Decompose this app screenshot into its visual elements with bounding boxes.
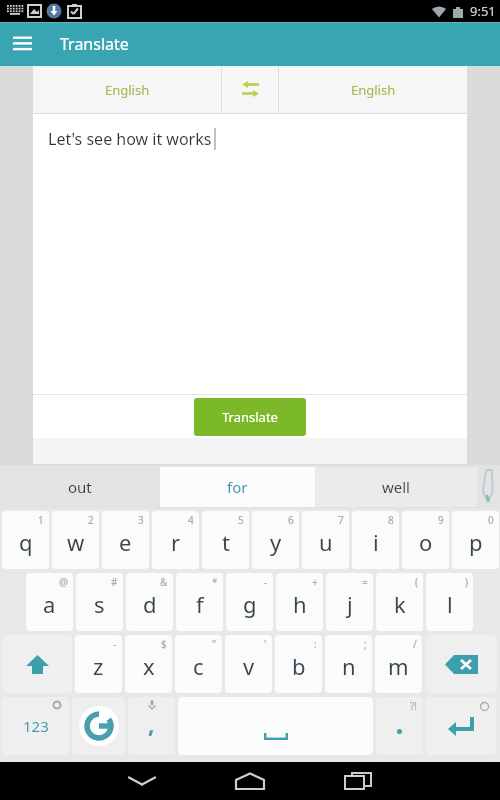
staticText: ": [212, 637, 217, 651]
staticText: 5: [238, 513, 244, 527]
button[interactable]: (: [376, 573, 423, 631]
button[interactable]: #: [76, 573, 123, 631]
button[interactable]: 123: [2, 697, 69, 755]
button[interactable]: *: [176, 573, 223, 631]
button[interactable]: @: [26, 573, 73, 631]
staticText: -: [264, 575, 268, 589]
button[interactable]: [178, 697, 373, 755]
button[interactable]: 3: [102, 511, 149, 569]
button[interactable]: 0: [452, 511, 499, 569]
staticText: 8: [388, 513, 394, 527]
button[interactable]: [426, 697, 496, 755]
staticText: k: [394, 589, 406, 619]
staticText: $: [161, 637, 167, 651]
staticText: Let's see how it works: [48, 128, 212, 150]
button[interactable]: 5: [202, 511, 249, 569]
button[interactable]: [425, 635, 497, 693]
button[interactable]: 9: [402, 511, 449, 569]
staticText: 3: [138, 513, 144, 527]
button[interactable]: [6, 28, 38, 60]
button[interactable]: [215, 762, 285, 800]
button[interactable]: -: [226, 573, 273, 631]
staticText: for: [227, 477, 248, 497]
staticText: &: [160, 575, 168, 589]
button[interactable]: [72, 697, 125, 755]
staticText: English: [351, 81, 396, 99]
staticText: ?!: [410, 699, 418, 713]
button[interactable]: -: [75, 635, 122, 693]
staticText: well: [382, 477, 410, 497]
staticText: ,: [148, 708, 155, 739]
button[interactable]: ,: [128, 697, 175, 755]
button[interactable]: ): [426, 573, 473, 631]
staticText: 7: [338, 513, 344, 527]
staticText: :: [314, 637, 317, 651]
staticText: q: [19, 527, 33, 557]
button[interactable]: 1: [2, 511, 49, 569]
staticText: g: [243, 589, 257, 619]
button[interactable]: English: [279, 66, 467, 113]
staticText: o: [419, 527, 433, 557]
staticText: j: [347, 589, 353, 619]
staticText: m: [388, 651, 409, 681]
button[interactable]: ': [225, 635, 272, 693]
staticText: 9: [438, 513, 444, 527]
staticText: ': [264, 637, 267, 651]
button[interactable]: /: [375, 635, 422, 693]
button[interactable]: [2, 635, 72, 693]
button[interactable]: $: [125, 635, 172, 693]
staticText: 123: [23, 716, 49, 736]
button[interactable]: [222, 66, 278, 113]
button[interactable]: [477, 465, 500, 509]
button[interactable]: Translate: [194, 398, 306, 436]
staticText: d: [143, 589, 157, 619]
button[interactable]: out: [0, 465, 160, 509]
staticText: =: [362, 575, 368, 589]
staticText: 2: [88, 513, 94, 527]
staticText: v: [243, 651, 255, 681]
button[interactable]: 6: [252, 511, 299, 569]
button[interactable]: :: [275, 635, 322, 693]
staticText: 6: [288, 513, 294, 527]
button[interactable]: well: [315, 467, 477, 507]
button[interactable]: 4: [152, 511, 199, 569]
staticText: (: [415, 575, 418, 589]
button[interactable]: 7: [302, 511, 349, 569]
button[interactable]: for: [160, 467, 315, 507]
button[interactable]: [107, 762, 177, 800]
staticText: @: [59, 575, 68, 589]
staticText: Translate: [222, 408, 278, 426]
staticText: English: [105, 81, 150, 99]
staticText: h: [293, 589, 307, 619]
staticText: out: [68, 477, 92, 497]
staticText: 0: [488, 513, 494, 527]
button[interactable]: 8: [352, 511, 399, 569]
button[interactable]: 2: [52, 511, 99, 569]
staticText: +: [312, 575, 318, 589]
staticText: *: [212, 575, 218, 589]
staticText: b: [292, 651, 306, 681]
button[interactable]: ?!: [376, 697, 423, 755]
staticText: p: [469, 527, 483, 557]
staticText: ): [465, 575, 468, 589]
button[interactable]: ;: [325, 635, 372, 693]
button[interactable]: &: [126, 573, 173, 631]
button[interactable]: =: [326, 573, 373, 631]
staticText: s: [94, 589, 105, 619]
button[interactable]: English: [33, 66, 221, 113]
staticText: /: [413, 637, 417, 651]
staticText: y: [270, 527, 282, 557]
staticText: c: [193, 651, 204, 681]
staticText: z: [93, 651, 104, 681]
button[interactable]: +: [276, 573, 323, 631]
button[interactable]: ": [175, 635, 222, 693]
staticText: -: [113, 637, 117, 651]
button[interactable]: [323, 762, 393, 800]
staticText: l: [447, 589, 453, 619]
staticText: r: [171, 527, 181, 557]
staticText: 9:51: [470, 2, 496, 20]
staticText: 1: [38, 513, 44, 527]
staticText: #: [111, 575, 118, 589]
staticText: n: [342, 651, 356, 681]
staticText: x: [143, 651, 155, 681]
